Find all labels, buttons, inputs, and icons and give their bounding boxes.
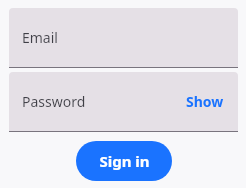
button[interactable]: Password <box>9 72 238 132</box>
staticText: Password <box>22 92 86 111</box>
button[interactable]: Show <box>184 90 226 113</box>
button[interactable]: Sign in <box>76 141 172 181</box>
staticText: Email <box>22 28 58 47</box>
button[interactable]: Email <box>9 8 238 68</box>
staticText: Show <box>186 92 224 111</box>
staticText: Sign in <box>99 151 150 171</box>
